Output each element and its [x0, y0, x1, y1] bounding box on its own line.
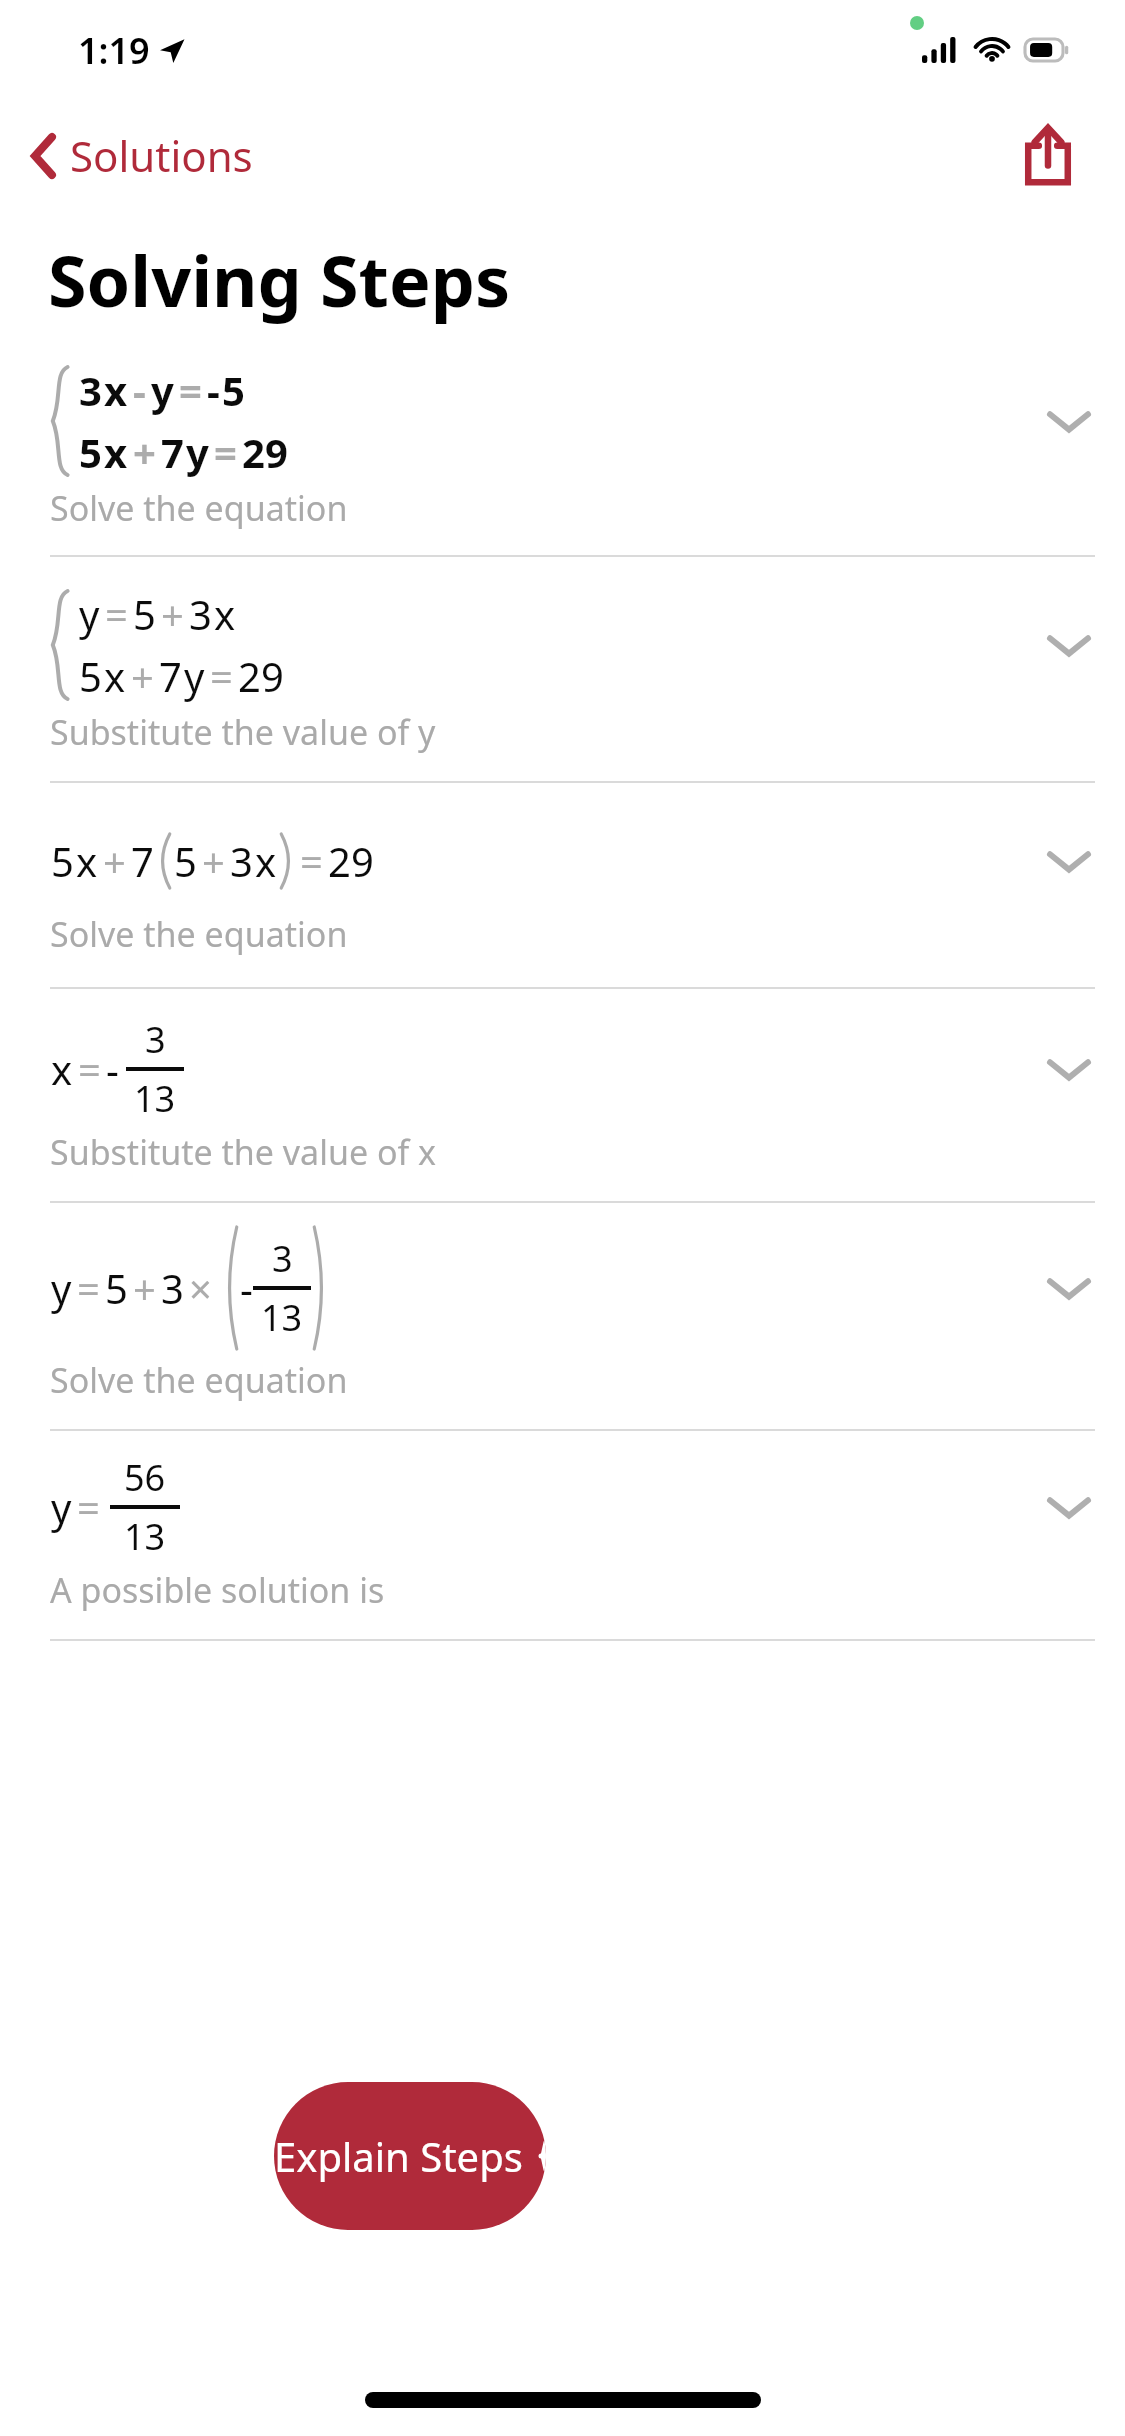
staticText: = [78, 1042, 101, 1096]
staticText: Solutions [70, 127, 253, 184]
staticText: x [104, 363, 128, 417]
staticText: 3 [161, 1261, 184, 1315]
staticText: 3 [189, 587, 212, 641]
staticText: 5 [79, 649, 102, 703]
button[interactable]: Share [1005, 112, 1091, 198]
button[interactable]: y [0, 1431, 1125, 1639]
staticText: - [207, 363, 220, 417]
staticText: - [240, 1261, 253, 1315]
staticText: = [179, 363, 202, 417]
staticText: + [161, 587, 184, 641]
staticText: x [214, 587, 236, 641]
button[interactable]: Expand step [1025, 601, 1113, 689]
staticText: y [151, 363, 174, 417]
staticText: Solve the equation [50, 485, 348, 531]
staticText: 5 [79, 425, 102, 479]
staticText: Solving Steps [48, 232, 511, 327]
staticText: x [76, 834, 98, 888]
staticText: x [255, 834, 277, 888]
button[interactable]: 3 [0, 357, 1125, 555]
button[interactable]: y [0, 1203, 1125, 1429]
staticText: - [133, 363, 146, 417]
staticText: 3 [272, 1234, 293, 1283]
staticText: y [186, 425, 209, 479]
staticText: x [104, 425, 128, 479]
staticText: + [131, 649, 154, 703]
staticText: × [189, 1261, 212, 1315]
staticText: 13 [124, 1512, 166, 1561]
staticText: Explain Steps [274, 2129, 523, 2183]
button[interactable]: Expand step [1025, 1025, 1113, 1113]
staticText: 5 [174, 834, 197, 888]
staticText: 7 [159, 649, 182, 703]
staticText: = [77, 1480, 100, 1534]
staticText: 1:19 [78, 26, 150, 75]
staticText: - [106, 1042, 119, 1096]
staticText: 13 [261, 1293, 303, 1342]
staticText: = [105, 587, 128, 641]
staticText: y [184, 649, 205, 703]
button[interactable]: y [0, 557, 1125, 781]
button[interactable]: Expand step [1025, 377, 1113, 465]
button[interactable]: Expand step [1025, 1244, 1113, 1332]
button[interactable]: x [0, 989, 1125, 1201]
staticText: + [133, 1261, 156, 1315]
staticText: Solve the equation [50, 1357, 348, 1403]
staticText: Substitute the value of x [50, 1129, 437, 1175]
staticText: 3 [145, 1015, 166, 1064]
staticText: Solve the equation [50, 911, 348, 957]
staticText: A possible solution is [50, 1567, 385, 1613]
staticText: + [103, 834, 126, 888]
staticText: 3 [79, 363, 102, 417]
staticText: = [77, 1261, 100, 1315]
staticText: y [51, 1480, 72, 1534]
staticText: 29 [242, 425, 288, 479]
staticText: 5 [105, 1261, 128, 1315]
button[interactable]: Expand step [1025, 1463, 1113, 1551]
staticText: 5 [133, 587, 156, 641]
staticText: = [210, 649, 233, 703]
staticText: x [51, 1042, 73, 1096]
staticText: 29 [328, 834, 374, 888]
staticText: 3 [230, 834, 253, 888]
button[interactable]: Explain Steps [274, 2082, 546, 2230]
staticText: + [133, 425, 156, 479]
staticText: 13 [134, 1074, 176, 1123]
button[interactable]: Solutions [14, 115, 261, 196]
staticText: = [300, 834, 323, 888]
staticText: 29 [238, 649, 284, 703]
staticText: + [202, 834, 225, 888]
staticText: x [104, 649, 126, 703]
staticText: = [214, 425, 237, 479]
staticText: 5 [51, 834, 74, 888]
staticText: y [51, 1261, 72, 1315]
staticText: y [79, 587, 100, 641]
staticText: Substitute the value of y [50, 709, 436, 755]
staticText: 7 [161, 425, 184, 479]
button[interactable]: 5 [0, 783, 1125, 987]
staticText: 5 [222, 363, 245, 417]
button[interactable]: Expand step [1025, 817, 1113, 905]
staticText: 56 [124, 1453, 166, 1502]
staticText: 7 [131, 834, 154, 888]
